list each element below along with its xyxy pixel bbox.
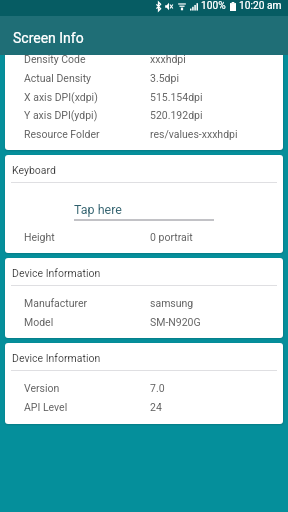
staticText: 0 portrait — [150, 231, 193, 243]
staticText: Height — [24, 231, 55, 243]
staticText: Device Information — [12, 267, 101, 279]
other: Sound off — [165, 2, 173, 11]
staticText: Actual Density — [24, 72, 92, 84]
staticText: Model — [24, 316, 54, 328]
staticText: API Level — [24, 401, 68, 413]
button[interactable]: Actual Density — [5, 72, 283, 89]
staticText: 515.154dpi — [150, 91, 203, 103]
staticText: 520.192dpi — [150, 109, 203, 121]
staticText: Screen Info — [13, 30, 84, 46]
button[interactable]: API Level — [5, 401, 283, 418]
staticText: Tap here — [74, 202, 122, 217]
other: Wi-Fi — [178, 2, 186, 11]
staticText: Y axis DPI(ydpi) — [24, 109, 98, 121]
other: Battery — [230, 2, 236, 11]
other: Bluetooth — [156, 2, 161, 11]
staticText: 10:20 am — [239, 0, 282, 12]
staticText: Density Code — [24, 55, 86, 65]
other: Mobile signal — [190, 2, 198, 11]
staticText: res/values-xxxhdpi — [150, 128, 238, 140]
button[interactable]: Density Code — [5, 55, 283, 70]
staticText: Manufacturer — [24, 297, 88, 309]
staticText: 24 — [150, 401, 162, 413]
staticText: xxxhdpi — [150, 55, 186, 65]
staticText: samsung — [150, 297, 194, 309]
staticText: X axis DPI(xdpi) — [24, 91, 98, 103]
staticText: 100% — [201, 0, 226, 12]
button[interactable]: Y axis DPI(ydpi) — [5, 109, 283, 126]
staticText: 7.0 — [150, 382, 165, 394]
button[interactable]: Height — [5, 231, 283, 248]
staticText: SM-N920G — [150, 316, 201, 328]
button[interactable]: Version — [5, 382, 283, 399]
staticText: Resource Folder — [24, 128, 100, 140]
staticText: Device Information — [12, 352, 101, 364]
staticText: 3.5dpi — [150, 72, 179, 84]
button[interactable]: Resource Folder — [5, 128, 283, 145]
button[interactable]: Manufacturer — [5, 297, 283, 314]
button[interactable]: X axis DPI(xdpi) — [5, 91, 283, 108]
staticText: Version — [24, 382, 60, 394]
button[interactable]: Model — [5, 316, 283, 333]
staticText: Keyboard — [12, 164, 56, 176]
button[interactable]: Tap here — [74, 202, 214, 221]
